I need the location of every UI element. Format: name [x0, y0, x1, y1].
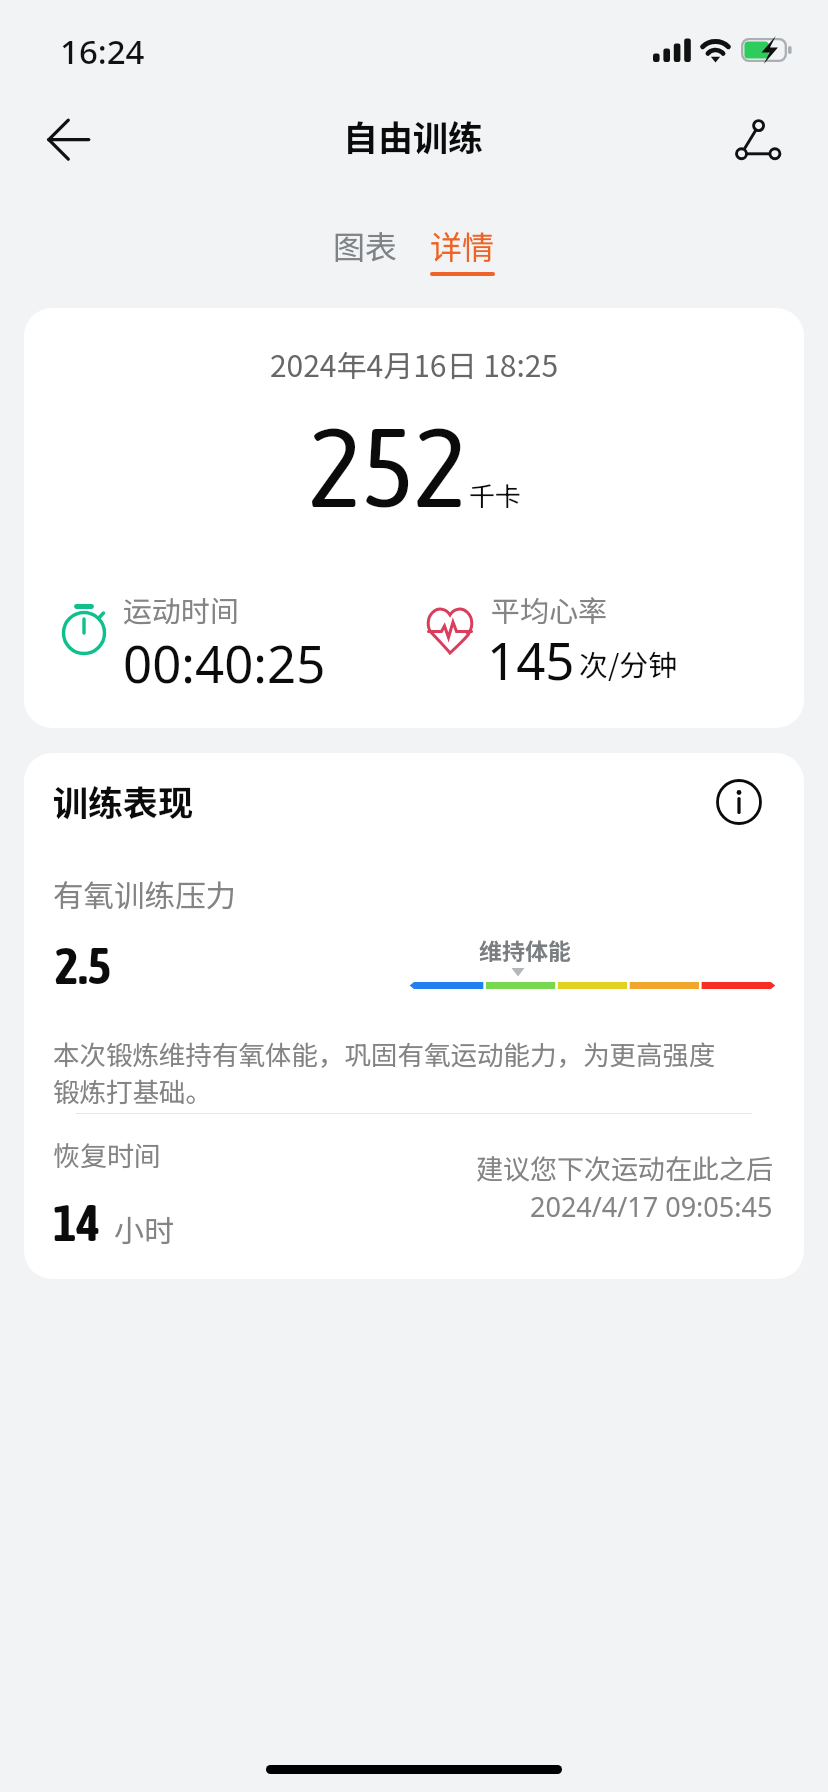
- staticText: 2024/4/17 09:05:45: [530, 1188, 773, 1225]
- staticText: 图表: [333, 222, 398, 268]
- staticText: 14: [53, 1194, 100, 1251]
- button[interactable]: 图表: [319, 212, 412, 278]
- staticText: 训练表现: [53, 775, 194, 826]
- staticText: 建议您下次运动在此之后: [476, 1148, 773, 1187]
- staticText: 恢复时间: [53, 1135, 161, 1174]
- button[interactable]: Info: [711, 774, 767, 830]
- staticText: 本次锻炼维持有氧体能，巩固有氧运动能力，为更高强度 锻炼打基础。: [53, 1034, 716, 1109]
- staticText: 自由训练: [343, 110, 484, 161]
- staticText: 小时: [114, 1207, 174, 1250]
- staticText: 2.5: [55, 937, 111, 994]
- staticText: 有氧训练压力: [53, 872, 236, 916]
- staticText: 平均心率: [491, 588, 608, 630]
- staticText: 252: [309, 402, 467, 530]
- staticText: 次/分钟: [579, 642, 678, 684]
- staticText: 16:24: [60, 29, 145, 74]
- button[interactable]: Back: [33, 105, 103, 175]
- staticText: 00:40:25: [123, 628, 326, 697]
- staticText: 千卡: [469, 476, 522, 514]
- staticText: 2024年4月16日 18:25: [24, 342, 804, 385]
- button[interactable]: Share: [723, 104, 793, 174]
- staticText: 详情: [430, 222, 495, 268]
- staticText: 运动时间: [123, 588, 240, 630]
- staticText: 145: [487, 625, 575, 694]
- staticText: 维持体能: [479, 933, 571, 966]
- button[interactable]: 详情: [416, 212, 509, 286]
